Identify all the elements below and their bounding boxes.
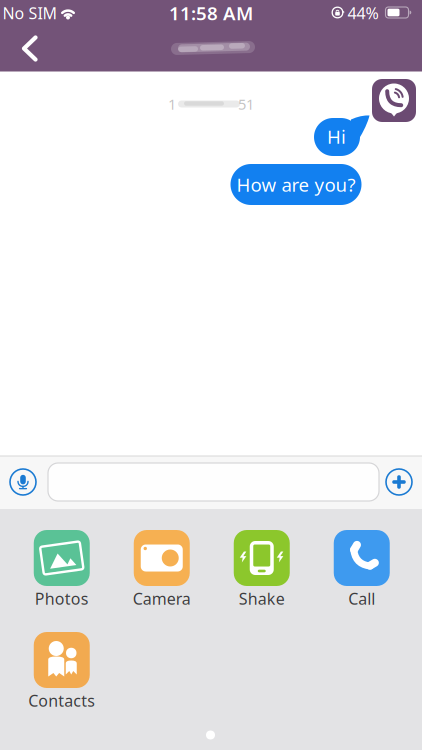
staticText: 44% [347, 2, 378, 24]
staticText: Contacts [28, 690, 95, 711]
button[interactable]: Back [8, 33, 52, 63]
staticText: Shake [239, 588, 285, 609]
staticText: Call [348, 588, 375, 609]
staticText: 51 [238, 94, 254, 114]
staticText: 1 [168, 94, 176, 114]
button[interactable]: Contacts [12, 627, 112, 719]
button[interactable]: Photos [12, 525, 112, 617]
button[interactable]: Shake [212, 525, 312, 617]
staticText: 11:58 AM [169, 1, 253, 25]
button[interactable]: More options [386, 469, 412, 495]
button[interactable]: Call [312, 525, 412, 617]
staticText: Photos [35, 588, 89, 609]
staticText: Camera [133, 588, 191, 609]
staticText: Hi [327, 124, 346, 149]
staticText: No SIM [2, 2, 57, 24]
button[interactable]: Voice message [10, 469, 36, 495]
staticText: How are you? [236, 172, 355, 197]
button[interactable]: Camera [112, 525, 212, 617]
